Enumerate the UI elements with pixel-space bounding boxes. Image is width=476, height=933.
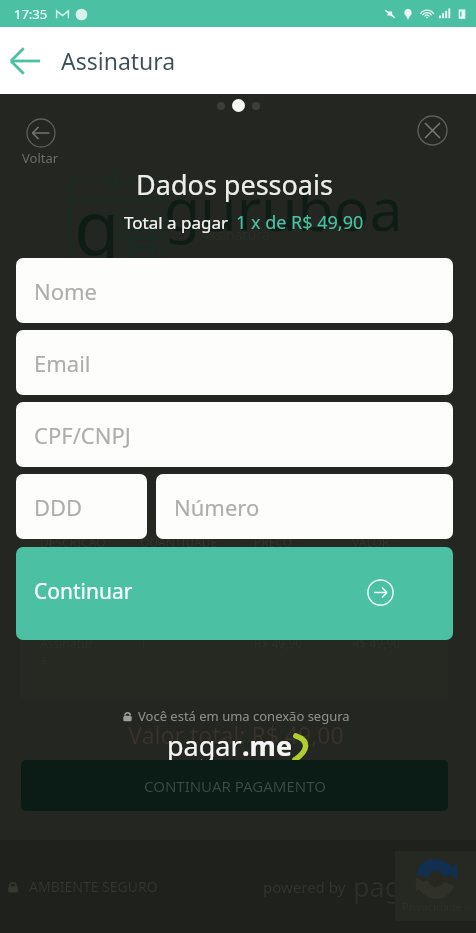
staticText: AMBIENTE SEGURO [29, 877, 158, 896]
staticText: Valor total: R$ 49,00 [0, 719, 472, 750]
staticText: DDD [34, 492, 83, 522]
staticText: 17:35 [14, 5, 48, 23]
staticText: R$ 49,90 [352, 635, 401, 651]
button[interactable]: Voltar [20, 116, 61, 169]
staticText: Assinatur a [40, 635, 140, 667]
staticText: VALOR ACUMULADO [352, 534, 428, 566]
staticText: 1 x de R$ 49,90 [236, 210, 364, 235]
staticText: 1 [140, 635, 254, 651]
button[interactable]: Nome [16, 258, 453, 323]
staticText: R$ 49,90 [254, 635, 352, 651]
staticText: Dados pessoais [16, 166, 453, 203]
staticText: Nome [34, 276, 98, 306]
staticText: Assinatura [61, 45, 176, 76]
staticText: DESCRIÇÃO [40, 534, 140, 550]
staticText: CONTINUAR PAGAMENTO [144, 776, 326, 796]
staticText: g [74, 176, 120, 277]
staticText: Total a pagar [124, 211, 228, 234]
button[interactable]: Back [0, 36, 50, 86]
staticText: pagar [353, 868, 428, 905]
button[interactable]: Email [16, 330, 453, 395]
button[interactable]: reCAPTCHA [395, 851, 476, 921]
button[interactable]: Close [417, 115, 448, 146]
staticText: Email [34, 348, 91, 378]
staticText: QUANTIDADE [140, 534, 254, 550]
button[interactable]: Continuar [16, 547, 453, 640]
staticText: Assinatura [200, 225, 270, 244]
staticText: CPF/CNPJ [34, 420, 131, 450]
staticText: pagar [167, 727, 242, 764]
staticText: Você está em uma conexão segura [138, 707, 350, 725]
button[interactable]: CPF/CNPJ [16, 402, 453, 467]
staticText: guruboa [164, 168, 403, 248]
staticText: PREÇO UNITÁRIO [254, 534, 352, 566]
staticText: powered by [263, 877, 346, 897]
staticText: Voltar [22, 149, 59, 167]
staticText: Número [174, 492, 260, 522]
button[interactable]: CONTINUAR PAGAMENTO [21, 760, 448, 811]
staticText: .me [242, 727, 293, 764]
button[interactable]: DDD [16, 474, 147, 539]
staticText: Continuar [34, 577, 133, 606]
button[interactable]: Número [156, 474, 453, 539]
